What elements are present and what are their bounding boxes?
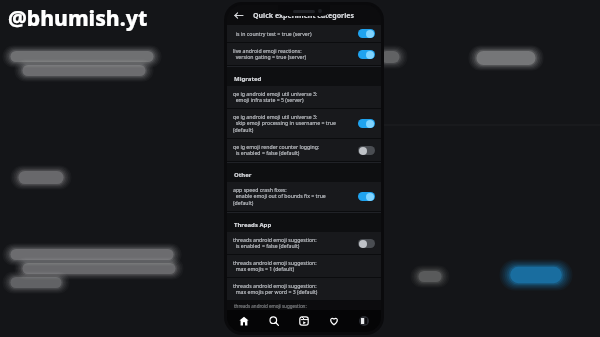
button[interactable]: is in country test = true (server) bbox=[227, 25, 381, 42]
staticText: qe ig emoji render counter logging: is e… bbox=[233, 143, 355, 157]
button[interactable]: Toggle on bbox=[358, 119, 375, 128]
staticText: threads android emoji suggestion: bbox=[234, 303, 307, 309]
staticText: Quick experiment categories bbox=[253, 11, 355, 21]
button[interactable]: Reels bbox=[291, 310, 317, 332]
staticText: qe ig android emoji util universe 3: emo… bbox=[233, 90, 372, 104]
button[interactable]: qe ig android emoji util universe 3: emo… bbox=[227, 86, 381, 108]
staticText: live android emoji reactions: version ga… bbox=[233, 47, 355, 61]
button[interactable]: qe ig android emoji util universe 3: ski… bbox=[227, 109, 381, 138]
button[interactable]: Profile bbox=[351, 310, 377, 332]
button[interactable]: threads android emoji suggestion: max em… bbox=[227, 278, 381, 300]
staticText: Other bbox=[234, 171, 252, 179]
button[interactable]: Home bbox=[231, 310, 257, 332]
staticText: qe ig android emoji util universe 3: ski… bbox=[233, 113, 355, 134]
button[interactable]: Back bbox=[231, 8, 245, 22]
button[interactable]: qe ig emoji render counter logging: is e… bbox=[227, 139, 381, 161]
staticText: threads android emoji suggestion: is ena… bbox=[233, 236, 355, 250]
button[interactable]: live android emoji reactions: version ga… bbox=[227, 43, 381, 65]
staticText: @bhumish.yt bbox=[8, 4, 148, 33]
button[interactable]: app speed crash fixes: enable emoji out … bbox=[227, 182, 381, 211]
button[interactable]: threads android emoji suggestion: max em… bbox=[227, 255, 381, 277]
staticText: is in country test = true (server) bbox=[233, 30, 355, 37]
staticText: threads android emoji suggestion: max em… bbox=[233, 282, 372, 296]
staticText: Threads App bbox=[234, 221, 272, 229]
button[interactable]: Toggle on bbox=[358, 192, 375, 201]
button[interactable]: Toggle on bbox=[358, 50, 375, 59]
staticText: threads android emoji suggestion: max em… bbox=[233, 259, 372, 273]
button[interactable]: threads android emoji suggestion: is ena… bbox=[227, 232, 381, 254]
button[interactable]: Search bbox=[261, 310, 287, 332]
button[interactable]: Toggle off bbox=[358, 146, 375, 155]
button[interactable]: Toggle off bbox=[358, 239, 375, 248]
staticText: Migrated bbox=[234, 75, 262, 83]
button[interactable]: Toggle on bbox=[358, 29, 375, 38]
button[interactable]: Activity bbox=[321, 310, 347, 332]
staticText: app speed crash fixes: enable emoji out … bbox=[233, 186, 355, 207]
